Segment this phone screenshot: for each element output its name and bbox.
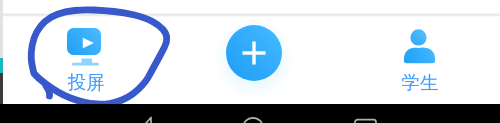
- staticText: 学生: [390, 71, 450, 94]
- button[interactable]: Add: [226, 25, 282, 81]
- button[interactable]: 投屏: [56, 22, 116, 94]
- staticText: 投屏: [56, 71, 116, 94]
- button[interactable]: 学生: [390, 22, 450, 94]
